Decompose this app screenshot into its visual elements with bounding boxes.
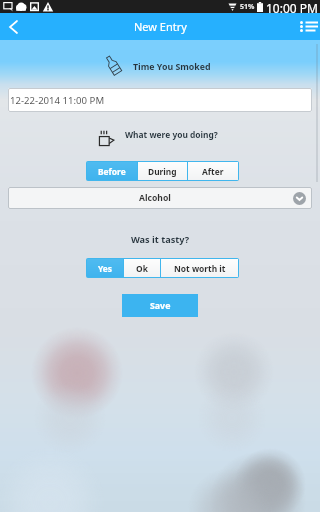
staticText: Alcohol (139, 192, 171, 204)
button[interactable]: Save (122, 294, 198, 317)
button[interactable]: After (188, 162, 238, 180)
button[interactable]: Alcohol (8, 187, 312, 209)
staticText: Before (98, 166, 126, 177)
staticText: During (148, 166, 177, 177)
button[interactable]: During (138, 162, 187, 180)
button[interactable]: Yes (87, 259, 123, 277)
button[interactable]: Before (87, 162, 137, 180)
staticText: What were you doing? (125, 129, 218, 140)
staticText: Not worth it (174, 263, 226, 274)
staticText: Yes (98, 263, 113, 274)
button[interactable]: 12-22-2014 11:00 PM (8, 88, 312, 112)
staticText: After (202, 166, 224, 177)
staticText: 12-22-2014 11:00 PM (10, 94, 105, 107)
button[interactable]: List (294, 13, 320, 40)
staticText: Was it tasty? (0, 233, 320, 246)
staticText: 51% (240, 2, 255, 12)
staticText: New Entry (134, 19, 187, 34)
button[interactable]: Back (0, 13, 28, 40)
staticText: 10:00 PM (266, 0, 318, 13)
button[interactable]: Not worth it (161, 259, 238, 277)
staticText: Time You Smoked (133, 61, 211, 73)
staticText: Ok (136, 263, 148, 274)
staticText: Save (150, 300, 171, 312)
button[interactable]: Ok (124, 259, 160, 277)
